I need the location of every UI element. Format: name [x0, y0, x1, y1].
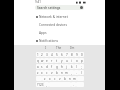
button[interactable]: p [79, 58, 84, 63]
staticText: x [49, 77, 51, 81]
staticText: e [46, 59, 48, 63]
button[interactable]: h [59, 64, 64, 69]
button[interactable]: 4 [49, 52, 54, 57]
button[interactable]: 7 [64, 52, 69, 57]
staticText: l [76, 65, 77, 69]
button[interactable]: z [42, 76, 47, 81]
button[interactable]: z [36, 70, 40, 75]
button[interactable]: c [52, 76, 57, 81]
button[interactable]: a [36, 64, 40, 69]
staticText: 0 [81, 53, 83, 57]
staticText: Notifications [39, 39, 58, 43]
button[interactable]: x [47, 76, 52, 81]
staticText: 8 [71, 53, 73, 57]
staticText: h [61, 65, 63, 69]
button[interactable]: Network & internet [34, 13, 85, 21]
button[interactable]: Apps [34, 29, 85, 37]
button[interactable]: f [49, 64, 54, 69]
button[interactable]: c [44, 70, 49, 75]
button[interactable]: g [54, 64, 59, 69]
button[interactable]: 8 [69, 52, 74, 57]
button[interactable]: m [72, 76, 77, 81]
button[interactable]: b [62, 76, 67, 81]
staticText: ; [81, 65, 82, 69]
button[interactable]: e [44, 58, 49, 63]
button[interactable]: o [74, 58, 79, 63]
staticText: 9:41 [35, 0, 41, 4]
button[interactable]: 1 [36, 52, 40, 57]
staticText: Apps [39, 31, 47, 35]
staticText: v [59, 77, 61, 81]
staticText: v [51, 71, 53, 75]
staticText: 4 [51, 53, 53, 57]
button[interactable]: b [54, 70, 59, 75]
staticText: s [41, 65, 43, 69]
other: Account [80, 6, 83, 9]
button[interactable]: n [59, 70, 64, 75]
button[interactable]: 0 [79, 52, 84, 57]
staticText: . [73, 83, 74, 87]
staticText: p [81, 59, 83, 63]
staticText: z [37, 71, 39, 75]
button[interactable]: , [69, 70, 74, 75]
button[interactable]: w [40, 58, 44, 63]
button[interactable]: x [40, 70, 44, 75]
staticText: 1 [37, 53, 39, 57]
button[interactable]: y [59, 58, 64, 63]
button[interactable]: . [71, 82, 76, 87]
button[interactable]: k [69, 64, 74, 69]
button[interactable]: ?123 [36, 82, 44, 87]
button[interactable]: . [74, 70, 79, 75]
button[interactable]: v [49, 70, 54, 75]
button[interactable]: r [49, 58, 54, 63]
staticText: 2 [41, 53, 43, 57]
staticText: / [81, 71, 83, 75]
staticText: The [56, 46, 62, 50]
staticText: m [73, 77, 76, 81]
staticText: I'm [70, 46, 75, 50]
staticText: i [71, 59, 72, 63]
button[interactable]: j [64, 64, 69, 69]
button[interactable]: 2 [40, 52, 44, 57]
staticText: x [41, 71, 43, 75]
button[interactable]: , [44, 82, 49, 87]
button[interactable]: l [74, 64, 79, 69]
staticText: j [66, 65, 67, 69]
staticText: q [37, 59, 39, 63]
button[interactable]: 9 [74, 52, 79, 57]
staticText: z [44, 77, 46, 81]
button[interactable]: Connected devices [34, 21, 85, 29]
staticText: , [71, 71, 72, 75]
button[interactable]: t [54, 58, 59, 63]
staticText: 3 [46, 53, 48, 57]
button[interactable]: v [57, 76, 62, 81]
staticText: b [64, 77, 66, 81]
staticText: r [51, 59, 53, 63]
button[interactable]: u [64, 58, 69, 63]
button[interactable]: i [69, 58, 74, 63]
staticText: 9 [76, 53, 78, 57]
button[interactable]: s [40, 64, 44, 69]
button[interactable]: d [44, 64, 49, 69]
button[interactable]: / [79, 70, 84, 75]
button[interactable]: Notifications [34, 37, 85, 45]
button[interactable]: ; [79, 64, 84, 69]
button[interactable]: 3 [44, 52, 49, 57]
staticText: ?123 [37, 83, 44, 87]
button[interactable]: 5 [54, 52, 59, 57]
button[interactable]: n [67, 76, 72, 81]
staticText: m [65, 71, 68, 75]
staticText: Network & internet [39, 15, 68, 19]
button[interactable]: Search settings [35, 5, 84, 10]
button[interactable]: 6 [59, 52, 64, 57]
staticText: d [46, 65, 48, 69]
button[interactable]: q [36, 58, 40, 63]
staticText: c [46, 71, 48, 75]
button[interactable]: m [64, 70, 69, 75]
staticText: t [56, 59, 58, 63]
staticText: g [56, 65, 58, 69]
